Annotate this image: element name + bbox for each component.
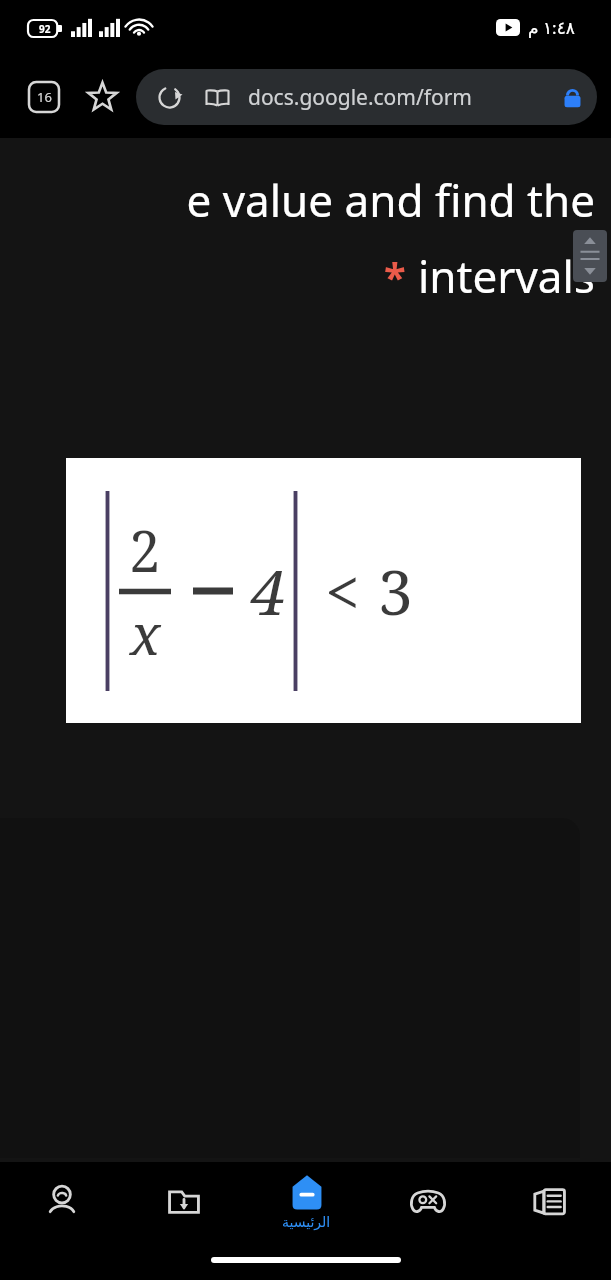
button[interactable]: Downloads xyxy=(123,1162,245,1240)
staticText: docs.google.com/form xyxy=(248,83,556,112)
staticText: 92 xyxy=(39,22,51,36)
staticText: * xyxy=(384,249,406,303)
button[interactable]: Games xyxy=(367,1162,489,1240)
staticText: < xyxy=(325,549,360,633)
button[interactable]: Bookmark xyxy=(80,75,124,119)
staticText: الرئيسية xyxy=(282,1214,331,1230)
staticText: x xyxy=(130,595,161,671)
button[interactable]: Scroll handle xyxy=(573,230,607,282)
button[interactable]: Articles xyxy=(489,1162,611,1240)
button[interactable]: Reload xyxy=(136,69,597,125)
button[interactable]: Reload xyxy=(150,78,188,116)
button[interactable]: Profile xyxy=(0,1162,123,1240)
staticText: ١:٤٨ م xyxy=(528,16,575,39)
button[interactable]: الرئيسية xyxy=(245,1162,367,1240)
button[interactable]: Reading mode xyxy=(198,78,236,116)
staticText: 4 xyxy=(251,549,286,633)
staticText: 16 xyxy=(37,88,52,106)
button[interactable]: Tabs, 16 open xyxy=(22,75,66,119)
staticText: e value and find the xyxy=(0,170,595,230)
staticText: 2 xyxy=(129,512,161,588)
button[interactable]: 2 xyxy=(66,458,581,723)
staticText: 3 xyxy=(378,549,413,633)
staticText: intervals xyxy=(418,246,595,306)
